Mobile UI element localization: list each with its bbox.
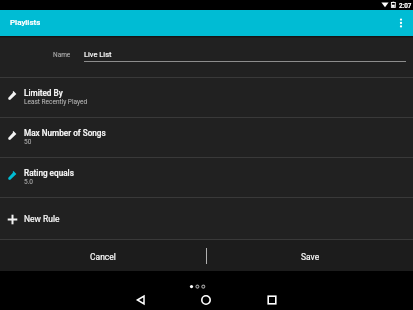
staticText: Live List (84, 50, 112, 59)
button[interactable]: Limited By (0, 77, 413, 117)
staticText: Name (53, 51, 71, 59)
staticText: Playlists (10, 18, 41, 27)
button[interactable]: Back (131, 290, 151, 310)
staticText: Least Recently Played (24, 98, 88, 106)
button[interactable]: Recents (262, 290, 282, 310)
button[interactable]: Cancel (0, 240, 206, 271)
button[interactable]: Live List (84, 44, 406, 62)
button[interactable]: More options (389, 10, 413, 36)
staticText: Max Number of Songs (24, 128, 106, 138)
staticText: Save (301, 252, 320, 262)
staticText: Rating equals (24, 168, 74, 178)
staticText: 50 (24, 138, 32, 146)
button[interactable]: Home (196, 290, 216, 310)
button[interactable]: Save (207, 240, 413, 271)
button[interactable]: New Rule (0, 197, 413, 237)
staticText: 2:07 (399, 2, 412, 9)
button[interactable]: Max Number of Songs (0, 117, 413, 157)
staticText: 5.0 (24, 178, 34, 186)
staticText: Cancel (90, 252, 116, 262)
staticText: New Rule (24, 214, 60, 224)
button[interactable]: Rating equals (0, 157, 413, 197)
staticText: Limited By (24, 88, 63, 98)
